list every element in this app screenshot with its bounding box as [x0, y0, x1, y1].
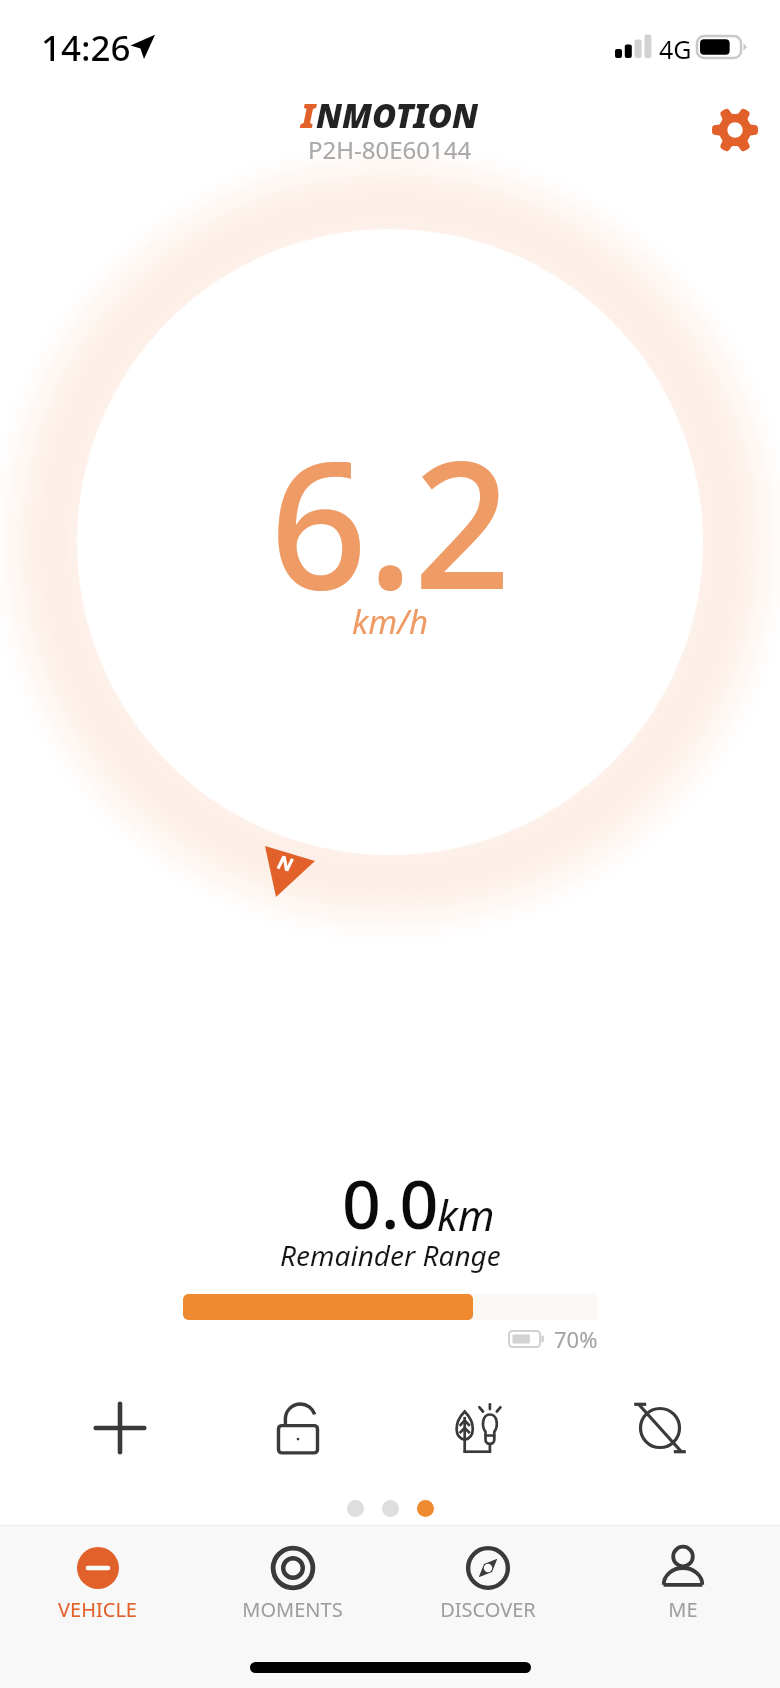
button[interactable]: MOMENTS	[195, 1526, 390, 1623]
staticText: P2H-80E60144	[308, 133, 472, 166]
staticText: 14:26	[41, 24, 131, 72]
staticText: DISCOVER	[440, 1596, 536, 1623]
staticText: km	[437, 1186, 495, 1243]
staticText: VEHICLE	[58, 1596, 137, 1623]
staticText: 4G	[659, 32, 692, 66]
button[interactable]: Unlock	[253, 1383, 343, 1473]
staticText: km/h	[352, 599, 429, 644]
staticText: Remainder Range	[280, 1236, 501, 1274]
staticText: 0.0	[342, 1156, 439, 1249]
button[interactable]: Add	[75, 1383, 165, 1473]
staticText: ME	[668, 1596, 698, 1623]
staticText: 70%	[554, 1324, 598, 1354]
button[interactable]: DISCOVER	[390, 1526, 585, 1623]
button[interactable]: Eco mode	[435, 1383, 525, 1473]
staticText: I	[301, 93, 316, 138]
staticText: NMOTION	[316, 93, 479, 138]
button[interactable]: VEHICLE	[0, 1526, 195, 1623]
button[interactable]: Settings	[700, 95, 770, 165]
button[interactable]: Speed limit	[615, 1383, 705, 1473]
staticText: MOMENTS	[242, 1596, 343, 1623]
staticText: 6.2	[270, 400, 511, 641]
button[interactable]: ME	[585, 1526, 780, 1623]
